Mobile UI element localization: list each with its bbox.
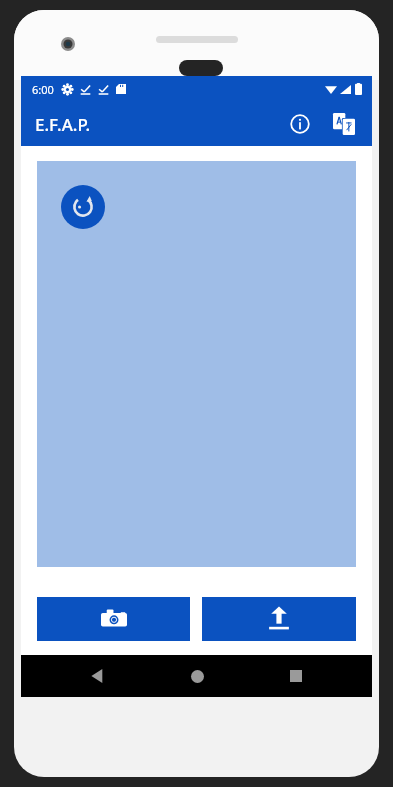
button[interactable]: Home [173,655,221,697]
staticText: E.F.A.P. [35,113,91,136]
staticText: 6:00 [32,82,54,97]
button[interactable]: Info [280,104,320,144]
button[interactable]: Recent apps [272,655,320,697]
button[interactable]: Rotate image [61,185,105,229]
button[interactable]: Back [73,655,121,697]
button[interactable]: Translate [324,104,364,144]
button[interactable]: Upload [202,597,356,641]
button[interactable]: Take photo [37,597,190,641]
